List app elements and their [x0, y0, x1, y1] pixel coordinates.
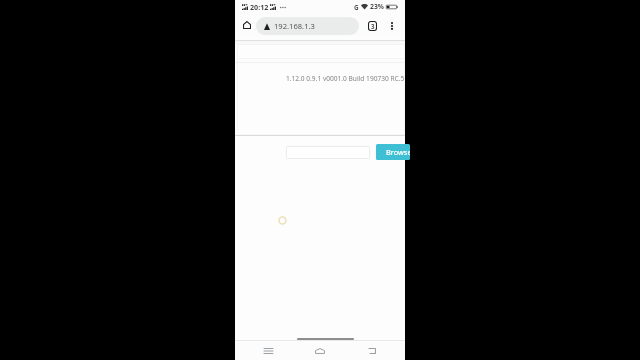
button[interactable]: More options	[386, 16, 398, 36]
button[interactable]	[286, 146, 370, 159]
button[interactable]: Recent apps	[258, 341, 278, 360]
staticText: 20:12	[250, 2, 269, 12]
staticText: Browse	[386, 147, 410, 157]
staticText: 3	[371, 22, 375, 30]
button[interactable]: Home	[238, 13, 256, 37]
button[interactable]: Back	[362, 341, 382, 360]
staticText: 192.168.1.3	[274, 21, 315, 31]
button[interactable]: Home	[310, 341, 330, 360]
staticText: 1.12.0 0.9.1 v0001.0 Build 190730 RC.5	[286, 74, 405, 83]
staticText: 23%	[370, 2, 384, 11]
staticText: G	[354, 3, 359, 10]
button[interactable]: 192.168.1.3	[256, 17, 359, 35]
button[interactable]: Tabs: 3	[366, 16, 379, 36]
button[interactable]: Browse	[376, 144, 410, 160]
